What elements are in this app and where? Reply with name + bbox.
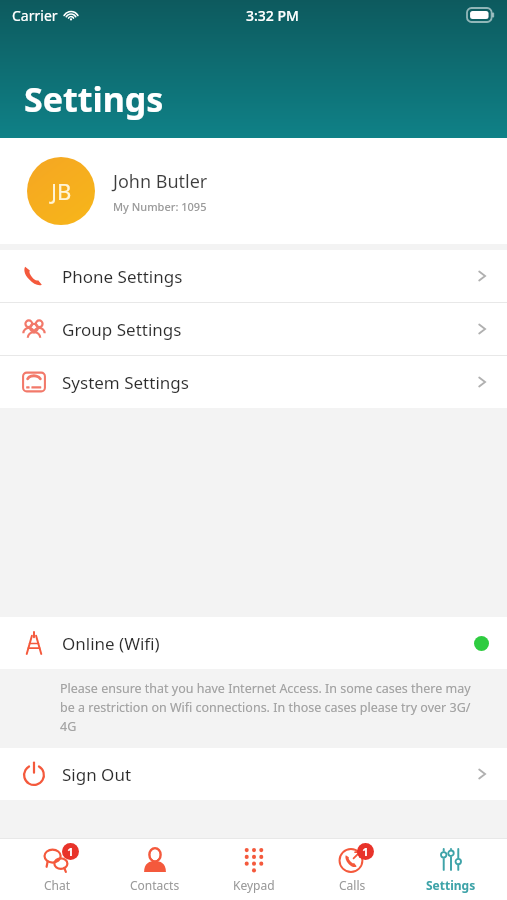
- staticText: JB: [51, 176, 72, 206]
- button[interactable]: Sign Out: [0, 748, 507, 800]
- staticText: John Butler: [113, 169, 208, 194]
- staticText: Online (Wifi): [62, 632, 160, 655]
- button[interactable]: 1: [310, 839, 394, 900]
- button[interactable]: JB: [0, 138, 507, 244]
- staticText: Calls: [339, 877, 366, 893]
- button[interactable]: Phone Settings: [0, 250, 507, 302]
- staticText: 3:32 PM: [246, 6, 299, 25]
- staticText: 1: [362, 844, 369, 859]
- staticText: My Number: 1095: [113, 199, 207, 214]
- button[interactable]: Group Settings: [0, 303, 507, 355]
- button[interactable]: Settings: [409, 839, 493, 900]
- staticText: Group Settings: [62, 318, 182, 341]
- button[interactable]: 1: [15, 839, 99, 900]
- staticText: Keypad: [233, 877, 275, 893]
- staticText: System Settings: [62, 371, 189, 394]
- button[interactable]: Keypad: [212, 839, 296, 900]
- staticText: Phone Settings: [62, 265, 183, 288]
- staticText: Carrier: [12, 6, 58, 25]
- staticText: Settings: [426, 877, 476, 893]
- staticText: 1: [67, 844, 74, 859]
- button[interactable]: Contacts: [113, 839, 197, 900]
- staticText: Please ensure that you have Internet Acc…: [60, 680, 477, 735]
- button[interactable]: Online (Wifi): [0, 617, 507, 669]
- staticText: Sign Out: [62, 763, 132, 786]
- staticText: Settings: [24, 76, 164, 122]
- button[interactable]: System Settings: [0, 356, 507, 408]
- staticText: Chat: [44, 877, 71, 893]
- staticText: Contacts: [130, 877, 180, 893]
